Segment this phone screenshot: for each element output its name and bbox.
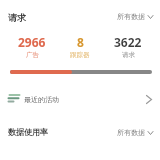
staticText: 数据使用率 bbox=[8, 127, 48, 137]
staticText: 所有数据 bbox=[117, 12, 145, 21]
staticText: 所有数据 bbox=[117, 128, 145, 137]
button[interactable]: 所有数据 bbox=[117, 12, 153, 21]
staticText: 2966 bbox=[18, 34, 46, 50]
button[interactable]: 最近的活动 bbox=[0, 88, 160, 110]
staticText: 请求 bbox=[122, 51, 135, 59]
staticText: 3622 bbox=[114, 34, 142, 50]
staticText: 请求 bbox=[8, 12, 26, 23]
staticText: 广告 bbox=[26, 51, 39, 59]
staticText: 8 bbox=[77, 34, 84, 50]
staticText: 最近的活动 bbox=[24, 95, 59, 104]
button[interactable]: 所有数据 bbox=[117, 128, 153, 137]
staticText: 跟踪器 bbox=[70, 51, 90, 59]
